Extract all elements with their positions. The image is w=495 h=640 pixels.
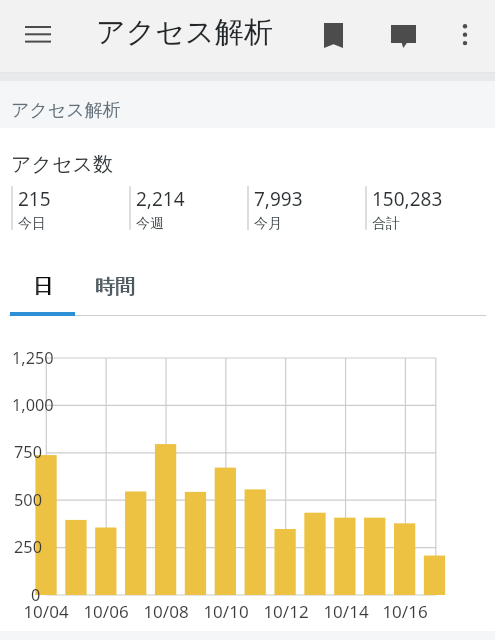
staticText: アクセス解析: [11, 99, 121, 122]
staticText: 今月: [254, 215, 282, 233]
staticText: 10/14: [311, 600, 381, 623]
staticText: アクセス解析: [96, 14, 273, 51]
staticText: 今日: [18, 215, 46, 233]
staticText: 250: [14, 536, 42, 558]
staticText: 7,993: [254, 186, 303, 212]
staticText: 0: [31, 584, 41, 606]
staticText: 10/10: [191, 600, 261, 623]
button[interactable]: 時間: [75, 266, 155, 306]
staticText: 時間: [95, 274, 135, 299]
button[interactable]: Menu: [0, 0, 76, 74]
staticText: 10/12: [251, 600, 321, 623]
staticText: 10/06: [71, 600, 141, 623]
button[interactable]: More options: [435, 0, 495, 74]
button[interactable]: Comments: [368, 0, 438, 74]
staticText: 2,214: [136, 186, 185, 212]
staticText: 日: [33, 274, 53, 299]
staticText: 10/08: [131, 600, 201, 623]
staticText: 1,250: [12, 347, 54, 369]
staticText: 今週: [136, 215, 164, 233]
staticText: 合計: [372, 215, 400, 233]
button[interactable]: 日: [10, 266, 75, 306]
staticText: 500: [14, 489, 42, 511]
staticText: 215: [18, 186, 51, 212]
staticText: 時間: [96, 274, 136, 299]
staticText: 750: [14, 441, 42, 463]
staticText: 10/04: [11, 600, 81, 623]
staticText: 日: [34, 274, 54, 299]
button[interactable]: Bookmark: [299, 0, 367, 74]
staticText: 150,283: [372, 186, 443, 212]
staticText: 10/16: [370, 600, 440, 623]
staticText: 1,000: [12, 394, 54, 416]
staticText: アクセス数: [11, 152, 113, 177]
